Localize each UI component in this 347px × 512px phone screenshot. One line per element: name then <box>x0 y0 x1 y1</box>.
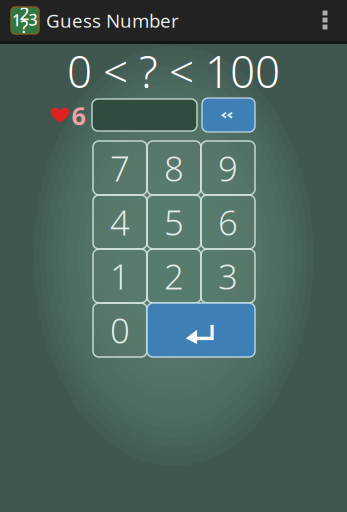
button[interactable]: 9 <box>201 141 255 195</box>
button[interactable]: 1 <box>93 249 147 303</box>
button[interactable]: Enter <box>147 303 255 357</box>
staticText: 7 <box>110 145 130 191</box>
staticText: 1 <box>110 253 130 299</box>
button[interactable]: Backspace <box>202 98 255 132</box>
button[interactable]: 4 <box>93 195 147 249</box>
button[interactable]: 3 <box>201 249 255 303</box>
staticText: 6 <box>218 199 238 245</box>
staticText: 9 <box>218 145 238 191</box>
button[interactable]: 7 <box>93 141 147 195</box>
staticText: 2 <box>164 253 184 299</box>
staticText: 4 <box>110 199 130 245</box>
button[interactable]: 2 <box>147 249 201 303</box>
staticText: 3 <box>28 9 37 30</box>
button[interactable]: 6 <box>201 195 255 249</box>
staticText: 0 <box>110 307 130 353</box>
staticText: 6 <box>71 99 85 132</box>
staticText: 5 <box>164 199 184 245</box>
button[interactable]: 0 <box>93 303 147 357</box>
staticText: Guess Number <box>46 8 179 33</box>
staticText: 2 <box>19 2 29 25</box>
staticText: 8 <box>164 145 184 191</box>
staticText: ? <box>20 15 28 38</box>
button[interactable]: 8 <box>147 141 201 195</box>
button[interactable]: More options <box>303 0 347 41</box>
staticText: 3 <box>218 253 238 299</box>
staticText: 1 <box>12 9 21 31</box>
staticText: 0 < ? < 100 <box>67 42 280 100</box>
button[interactable]: 5 <box>147 195 201 249</box>
